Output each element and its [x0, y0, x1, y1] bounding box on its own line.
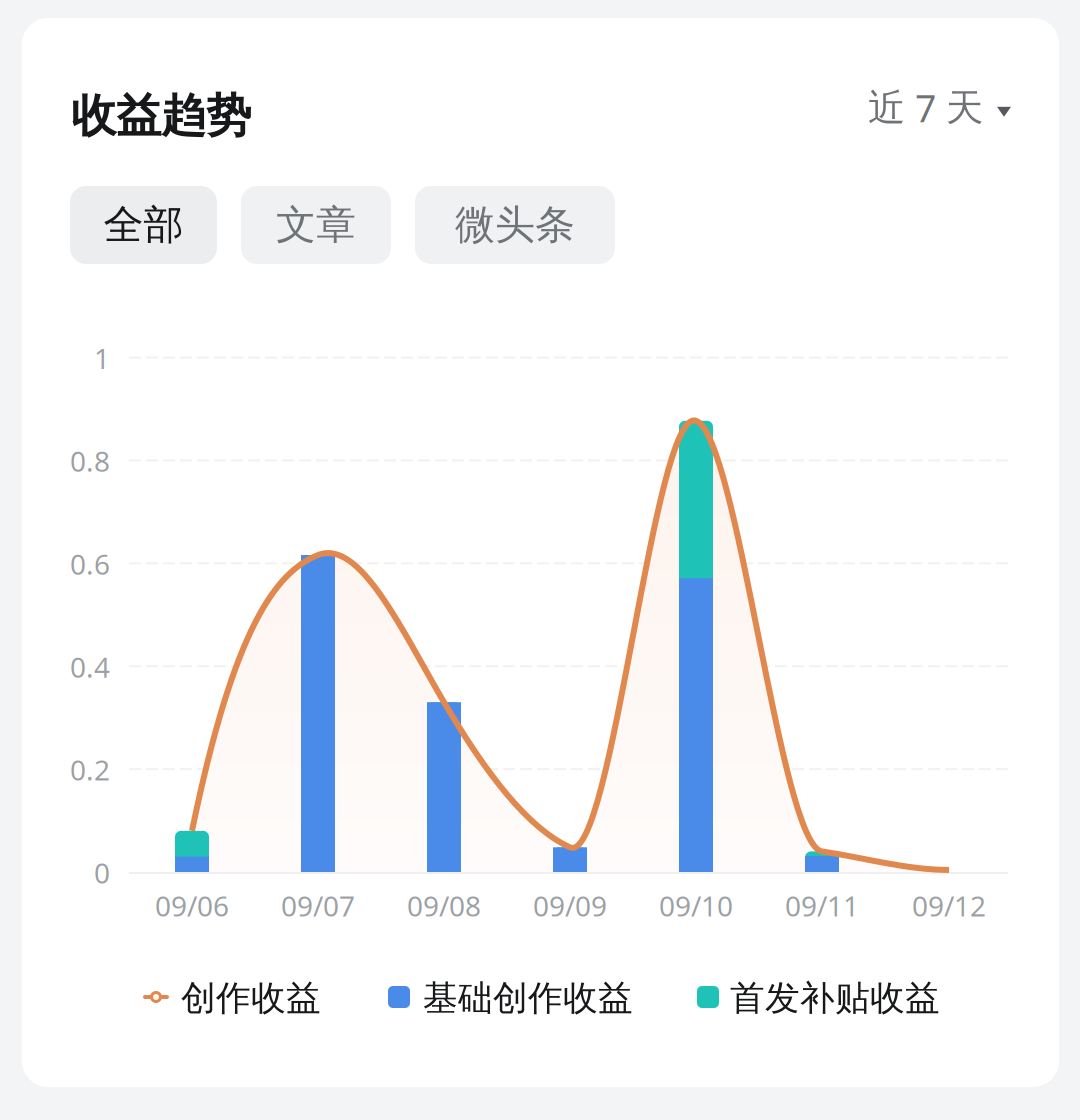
staticText: 首发补贴收益	[730, 977, 940, 1020]
staticText: 天	[946, 85, 983, 131]
staticText: 近	[868, 85, 905, 131]
staticText: 全部	[103, 200, 183, 249]
staticText: 09/11	[785, 887, 859, 924]
staticText: 09/08	[407, 887, 481, 924]
staticText: 基础创作收益	[423, 977, 633, 1020]
staticText: 7	[915, 83, 936, 133]
staticText: 09/12	[912, 887, 986, 924]
staticText: 1	[94, 339, 110, 377]
staticText: 0.4	[70, 648, 110, 685]
staticText: 0.6	[70, 545, 110, 582]
staticText: 文章	[276, 200, 356, 249]
staticText: 微头条	[455, 200, 575, 249]
staticText: 09/10	[659, 887, 733, 924]
staticText: 收益趋势	[71, 88, 251, 144]
staticText: 09/09	[533, 887, 607, 924]
staticText: 0	[94, 854, 110, 891]
button[interactable]: 全部	[70, 186, 217, 264]
staticText: 0.8	[70, 442, 110, 480]
staticText: 创作收益	[181, 977, 321, 1020]
staticText: 09/07	[281, 887, 355, 924]
staticText: 0.2	[70, 751, 110, 788]
button[interactable]: 微头条	[415, 186, 615, 264]
staticText: 09/06	[155, 887, 229, 924]
button[interactable]: 文章	[241, 186, 391, 264]
button[interactable]: 近	[868, 83, 1007, 133]
